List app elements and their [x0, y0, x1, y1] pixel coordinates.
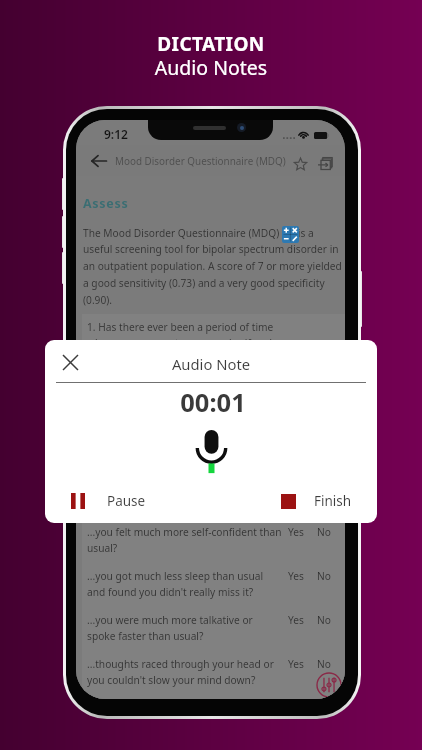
- staticText: Yes: [288, 525, 304, 539]
- staticText: ...you got much less sleep than usual an…: [87, 569, 264, 599]
- button[interactable]: ...thoughts raced through your head or y…: [82, 651, 345, 695]
- button[interactable]: ...you were much more talkative or spoke…: [82, 607, 345, 651]
- button[interactable]: Finish: [273, 485, 362, 517]
- staticText: Yes: [288, 657, 304, 671]
- button[interactable]: Close: [55, 347, 85, 377]
- staticText: ...you were much more talkative or spoke…: [87, 613, 253, 643]
- staticText: No: [317, 657, 331, 671]
- staticText: Yes: [288, 613, 304, 627]
- staticText: ...you felt much more self-confident tha…: [87, 525, 282, 555]
- staticText: DICTATION: [0, 31, 422, 57]
- button[interactable]: ...you were so easily distracted by thin…: [82, 695, 345, 699]
- staticText: Mood Disorder Questionnaire (MDQ): [115, 154, 286, 167]
- staticText: The Mood Disorder Questionnaire (MDQ) is…: [83, 226, 342, 307]
- button[interactable]: Adjust settings: [316, 672, 342, 698]
- staticText: Finish: [314, 492, 352, 510]
- button[interactable]: ...you felt much more self-confident tha…: [82, 519, 345, 563]
- button[interactable]: Favorite: [291, 154, 310, 173]
- button[interactable]: Back: [87, 149, 111, 173]
- button[interactable]: ...you got much less sleep than usual an…: [82, 563, 345, 607]
- button[interactable]: Pause: [63, 485, 154, 517]
- staticText: Yes: [288, 569, 304, 583]
- staticText: Assess: [83, 195, 129, 212]
- staticText: No: [317, 525, 331, 539]
- staticText: 00:01: [47, 385, 377, 420]
- button[interactable]: 1. Has there ever been a period of time …: [82, 314, 345, 519]
- staticText: Audio Note: [45, 354, 377, 374]
- button[interactable]: Move to folder: [316, 154, 335, 173]
- staticText: 1. Has there ever been a period of time …: [87, 320, 281, 350]
- staticText: Pause: [107, 492, 146, 510]
- staticText: 9:12: [104, 126, 128, 142]
- staticText: ...thoughts raced through your head or y…: [87, 657, 274, 687]
- staticText: Audio Notes: [0, 54, 422, 81]
- staticText: No: [317, 569, 331, 583]
- staticText: No: [317, 613, 331, 627]
